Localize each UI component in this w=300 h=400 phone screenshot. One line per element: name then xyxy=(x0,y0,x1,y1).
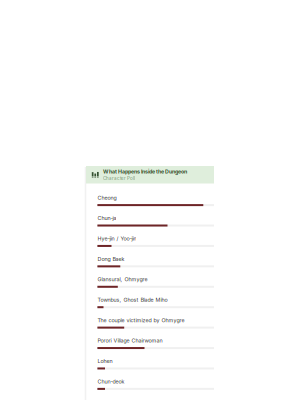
staticText: Character Poll xyxy=(103,176,135,181)
staticText: Chun-ja xyxy=(97,215,116,221)
staticText: Dong Baek xyxy=(97,256,124,262)
button[interactable]: Dong Baek xyxy=(97,256,216,276)
button[interactable]: Chun-ja xyxy=(97,215,216,235)
button[interactable]: Cheong xyxy=(97,195,216,215)
button[interactable]: Glansural, Ohmygre xyxy=(97,276,216,297)
staticText: Porori Village Chairwoman xyxy=(97,337,162,344)
staticText: Cheong xyxy=(97,194,116,201)
staticText: What Happens Inside the Dungeon xyxy=(103,168,187,175)
staticText: The couple victimized by Ohmygre xyxy=(97,317,184,323)
button[interactable]: Townbus, Ghost Blade Miho xyxy=(97,297,216,317)
button[interactable]: The couple victimized by Ohmygre xyxy=(97,317,216,338)
staticText: Lohen xyxy=(97,358,112,364)
staticText: Townbus, Ghost Blade Miho xyxy=(97,297,167,303)
button[interactable]: Lohen xyxy=(97,358,216,378)
button[interactable]: Porori Village Chairwoman xyxy=(97,338,216,358)
staticText: Hye-jin / Yoo-jin xyxy=(97,235,136,242)
staticText: Glansural, Ohmygre xyxy=(97,276,147,283)
staticText: Chun-deok xyxy=(97,378,124,385)
button[interactable]: Chun-deok xyxy=(97,378,216,399)
button[interactable]: Hye-jin / Yoo-jin xyxy=(97,235,216,256)
button[interactable]: What Happens Inside the Dungeon xyxy=(86,166,214,183)
